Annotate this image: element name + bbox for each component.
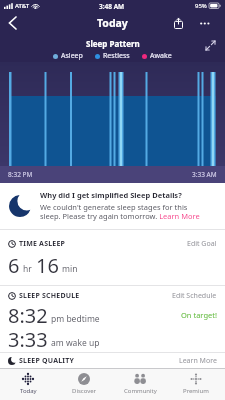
- staticText: Discover: [72, 387, 97, 395]
- button[interactable]: [4, 14, 22, 32]
- staticText: 3:33 AM: [192, 170, 217, 179]
- staticText: On target!: [181, 310, 217, 320]
- staticText: AT&T: [15, 2, 30, 10]
- button[interactable]: [170, 15, 186, 31]
- staticText: TIME ASLEEP: [19, 239, 66, 249]
- staticText: 8:32 PM: [8, 170, 33, 179]
- staticText: Awake: [150, 51, 172, 61]
- button[interactable]: Today: [0, 369, 56, 400]
- staticText: 3:48 AM: [99, 2, 125, 11]
- staticText: 6: [8, 252, 20, 277]
- staticText: 95%: [195, 2, 207, 10]
- staticText: 16: [36, 252, 59, 277]
- staticText: SLEEP QUALITY: [19, 356, 75, 366]
- staticText: Today: [20, 387, 37, 395]
- staticText: min: [62, 263, 78, 275]
- button[interactable]: Premium: [168, 369, 224, 400]
- staticText: am wake up: [51, 337, 100, 349]
- staticText: Premium: [183, 387, 209, 395]
- button[interactable]: [197, 15, 213, 31]
- staticText: Edit Goal: [187, 239, 217, 249]
- staticText: 3:33: [8, 326, 48, 351]
- button[interactable]: Edit Schedule: [172, 291, 217, 301]
- button[interactable]: Why did I get simplified Sleep Details?: [0, 183, 225, 229]
- staticText: Why did I get simplified Sleep Details?: [40, 190, 182, 200]
- button[interactable]: TIME ASLEEP: [0, 230, 225, 285]
- button[interactable]: SLEEP SCHEDULE: [0, 286, 225, 352]
- staticText: Today: [97, 16, 128, 30]
- staticText: Sleep Pattern: [86, 38, 140, 49]
- staticText: Learn More: [179, 356, 217, 366]
- staticText: Edit Schedule: [172, 291, 217, 301]
- button[interactable]: Edit Goal: [187, 239, 217, 249]
- button[interactable]: SLEEP QUALITY: [0, 353, 225, 368]
- staticText: Asleep: [61, 51, 83, 61]
- staticText: hr: [23, 263, 32, 275]
- button[interactable]: Community: [112, 369, 168, 400]
- staticText: pm bedtime: [51, 313, 100, 325]
- staticText: Restless: [103, 51, 130, 61]
- staticText: SLEEP SCHEDULE: [19, 291, 80, 301]
- button[interactable]: Discover: [56, 369, 112, 400]
- staticText: We couldn't generate sleep stages for th…: [40, 202, 205, 222]
- staticText: Community: [124, 387, 157, 395]
- staticText: 8:32: [8, 302, 48, 327]
